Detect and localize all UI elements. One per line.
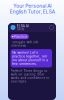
staticText: Your Personal AI English Tutor, ELSA <box>9 3 54 15</box>
staticText: Practice <box>14 35 27 38</box>
staticText: No worries! Let's practice together. Tel… <box>12 51 48 66</box>
staticText: I struggle with job interviews <box>10 40 38 47</box>
staticText: Perfect! Three things to work on: pacing… <box>10 69 49 83</box>
staticText: Online <box>17 28 24 31</box>
staticText: ELSA AI <box>17 24 29 28</box>
